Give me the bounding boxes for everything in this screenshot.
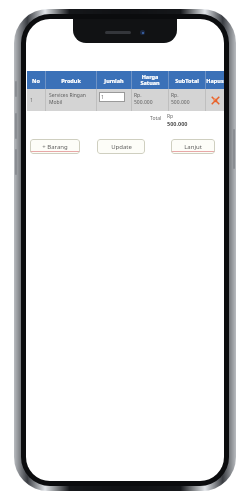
- staticText: Services Ringan Mobil: [49, 92, 86, 105]
- staticText: Total: [150, 115, 162, 122]
- staticText: No: [32, 77, 40, 84]
- staticText: Rp. 500.000: [171, 92, 190, 105]
- button[interactable]: Hapus: [206, 89, 224, 111]
- staticText: Lanjut: [184, 143, 202, 151]
- staticText: Rp. 500.000: [134, 92, 153, 105]
- staticText: Harga Satuan: [140, 73, 160, 87]
- staticText: + Barang: [42, 143, 68, 151]
- staticText: 1: [30, 97, 33, 104]
- staticText: 1: [101, 94, 104, 101]
- button[interactable]: Update: [97, 139, 145, 154]
- staticText: Hapus: [206, 77, 224, 84]
- staticText: SubTotal: [175, 77, 199, 84]
- button[interactable]: Lanjut: [171, 139, 215, 154]
- button[interactable]: 1: [27, 89, 224, 111]
- button[interactable]: 1: [99, 92, 125, 102]
- staticText: Rp: [167, 113, 174, 120]
- staticText: Produk: [61, 77, 81, 84]
- staticText: Update: [111, 143, 132, 151]
- staticText: 500.000: [167, 120, 188, 127]
- button[interactable]: + Barang: [30, 139, 80, 154]
- staticText: Jumlah: [104, 77, 124, 84]
